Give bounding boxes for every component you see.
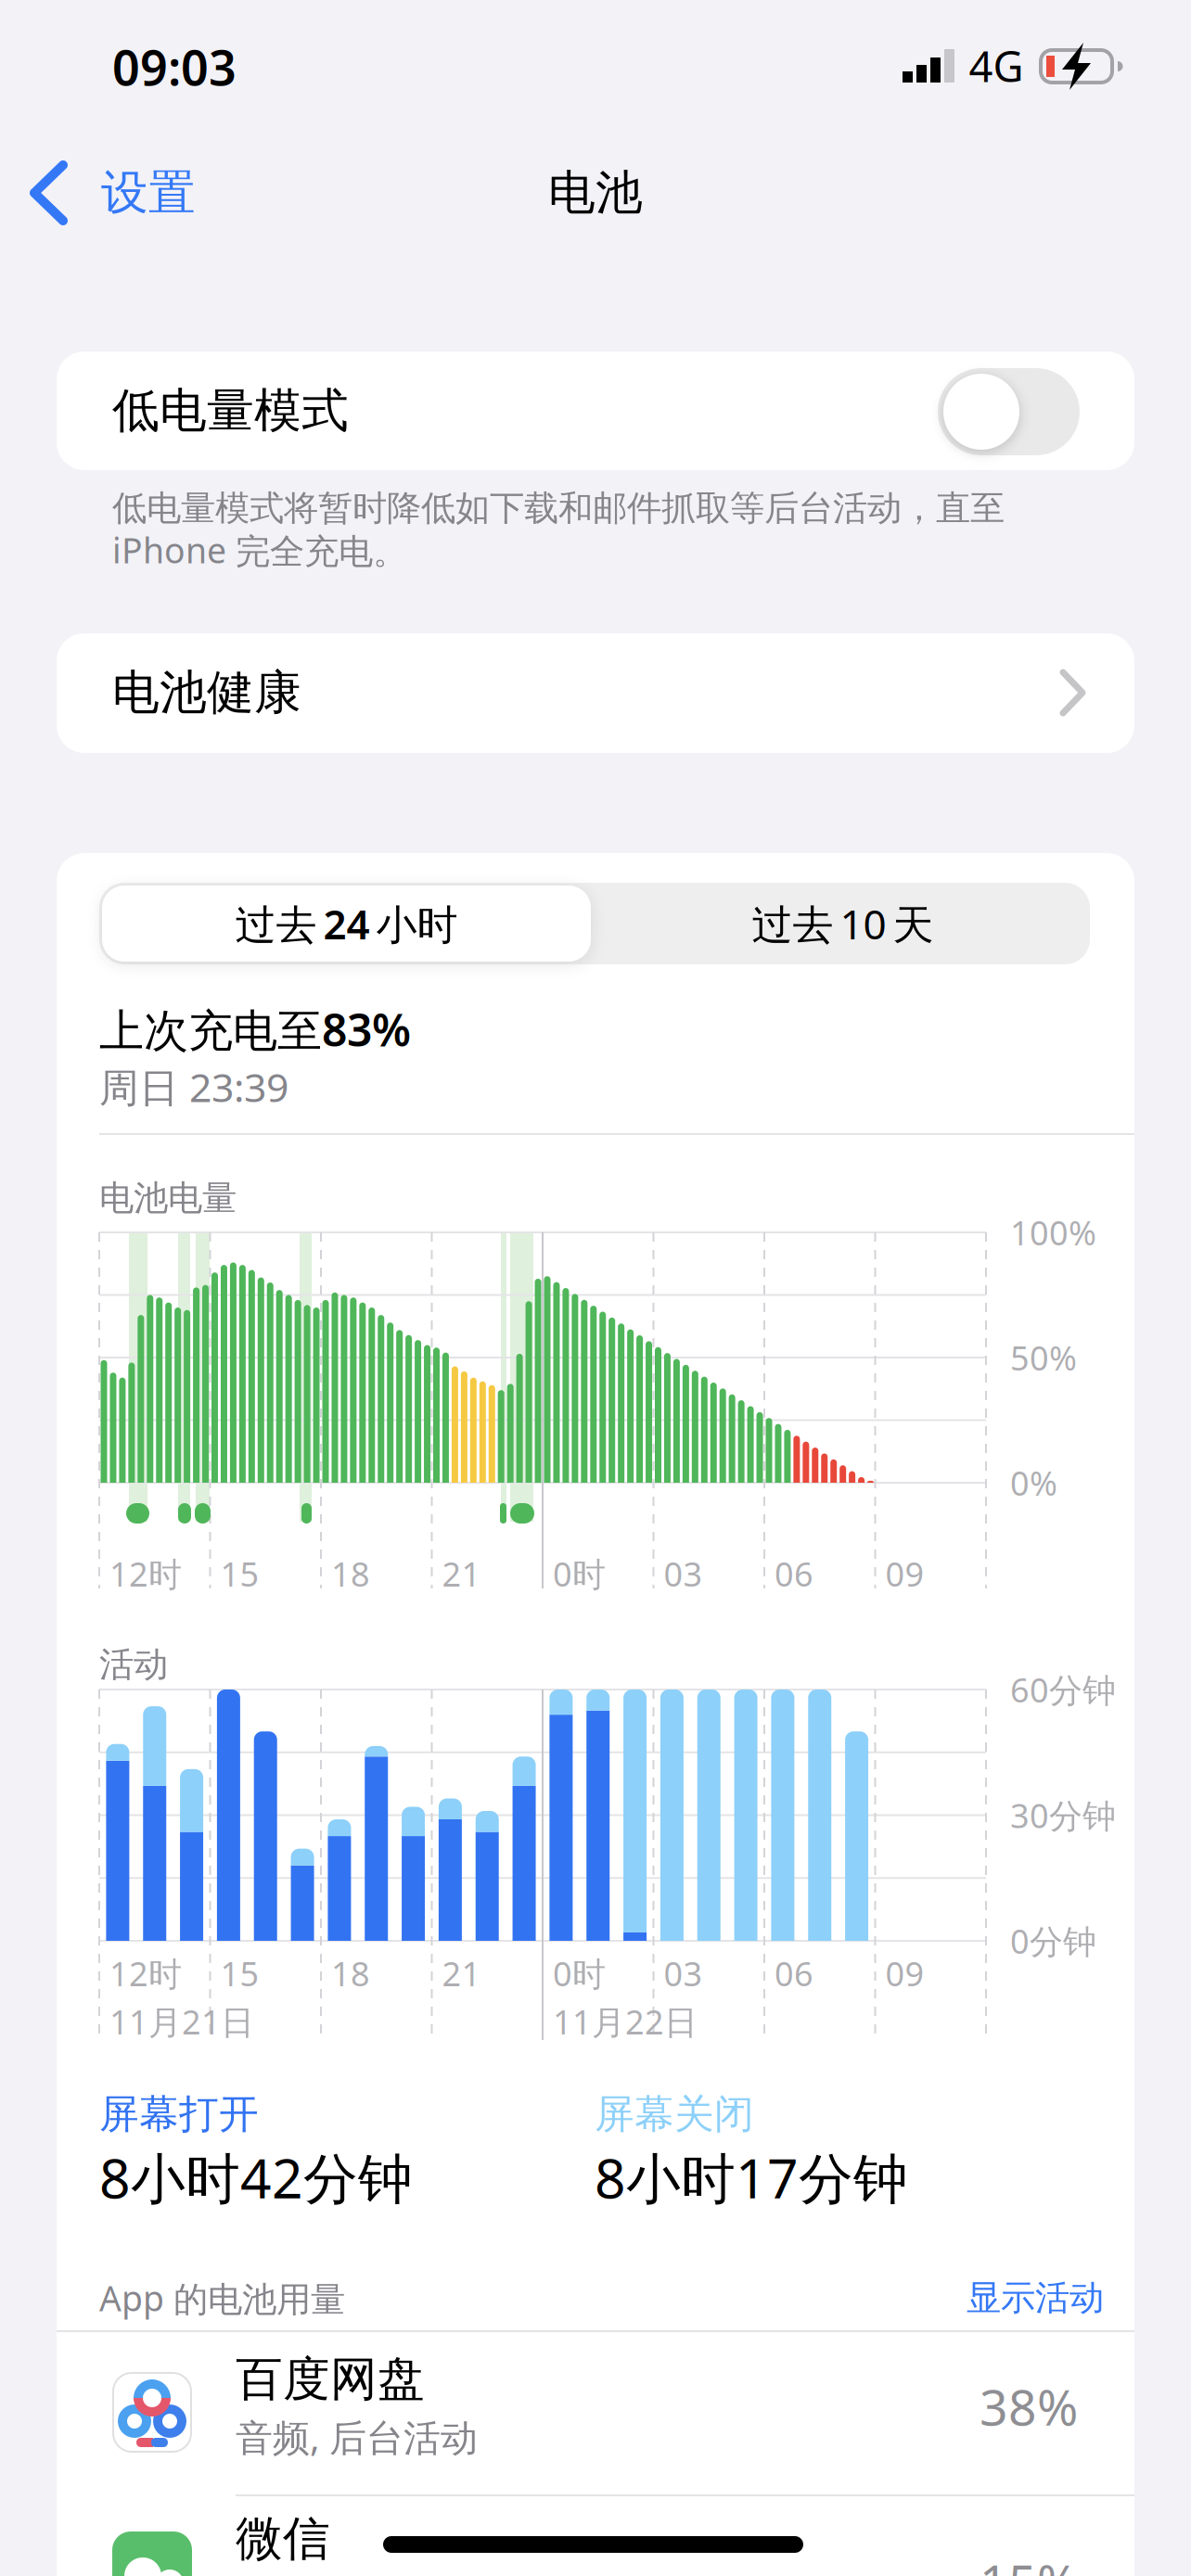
staticText: 18 [331,1551,370,1596]
button[interactable]: 过去 10 天 [598,886,1087,962]
staticText: 50% [1010,1335,1077,1380]
staticText: 0时 [553,1951,606,1995]
staticText: 音频, 后台活动 [236,2412,478,2461]
staticText: 0% [1010,1461,1057,1505]
staticText: 21 [442,1551,481,1596]
button[interactable]: 低电量模式 [938,368,1080,455]
staticText: 电池 [548,164,643,222]
staticText: 06 [775,1551,813,1596]
staticText: iPhone 完全充电。 [112,527,407,573]
staticText: 百度网盘 [236,2351,425,2408]
staticText: 06 [775,1951,813,1995]
button[interactable]: 过去 24 小时 [102,886,591,962]
staticText: 09 [885,1551,924,1596]
staticText: 周日 23:39 [99,1061,288,1113]
staticText: 屏幕打开 [99,2090,259,2139]
staticText: 09 [885,1951,924,1995]
staticText: 过去 24 小时 [235,896,458,951]
staticText: 11月21日 [109,1999,254,2044]
button[interactable]: 百度网盘 [57,2318,1134,2481]
staticText: 18 [331,1951,370,1995]
staticText: 09:03 [112,35,237,99]
button[interactable]: 微信 [57,2478,1134,2576]
staticText: 15% [980,2549,1078,2576]
staticText: 电池电量 [99,1177,237,1219]
staticText: 0时 [553,1551,606,1596]
staticText: 30分钟 [1010,1793,1116,1837]
staticText: 11月22日 [553,1999,698,2044]
staticText: 15 [220,1551,259,1596]
staticText: 电池健康 [112,664,301,722]
staticText: 低电量模式将暂时降低如下载和邮件抓取等后台活动，直至 [112,487,1005,529]
button[interactable]: 返回设置 [5,160,274,225]
button[interactable]: 电池健康 [57,633,1134,753]
staticText: 显示活动 [967,2277,1104,2319]
staticText: 12时 [109,1551,182,1596]
button[interactable]: 显示活动 [900,2277,1104,2319]
staticText: 低电量模式 [112,382,349,440]
staticText: 4G [969,38,1024,94]
staticText: 60分钟 [1010,1667,1116,1712]
staticText: App 的电池用量 [99,2275,345,2321]
staticText: 100% [1010,1210,1096,1255]
staticText: 过去 10 天 [752,896,934,951]
staticText: 微信 [236,2510,330,2568]
staticText: 03 [664,1551,703,1596]
staticText: 0分钟 [1010,1919,1096,1963]
staticText: 设置 [101,164,196,222]
staticText: 15 [220,1951,259,1995]
staticText: 上次充电至83% [99,1000,411,1059]
staticText: 12时 [109,1951,182,1995]
staticText: 38% [980,2373,1078,2439]
staticText: 活动 [99,1643,168,1686]
staticText: 8小时17分钟 [595,2141,908,2213]
staticText: 03 [664,1951,703,1995]
staticText: 8小时42分钟 [99,2141,413,2213]
staticText: 21 [442,1951,481,1995]
staticText: 屏幕关闭 [595,2090,754,2139]
